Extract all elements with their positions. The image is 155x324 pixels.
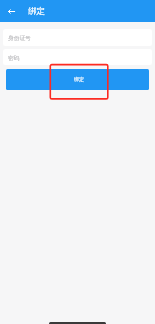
staticText: 密码 [8,55,20,62]
staticText: 身份证号 [8,35,31,42]
staticText: 绑定 [74,76,84,82]
staticText: 绑定 [28,6,45,17]
button[interactable]: 绑定 [6,69,149,90]
button[interactable]: Back [5,0,17,22]
button[interactable]: 身份证号 [3,29,152,46]
button[interactable]: 密码 [3,49,152,65]
